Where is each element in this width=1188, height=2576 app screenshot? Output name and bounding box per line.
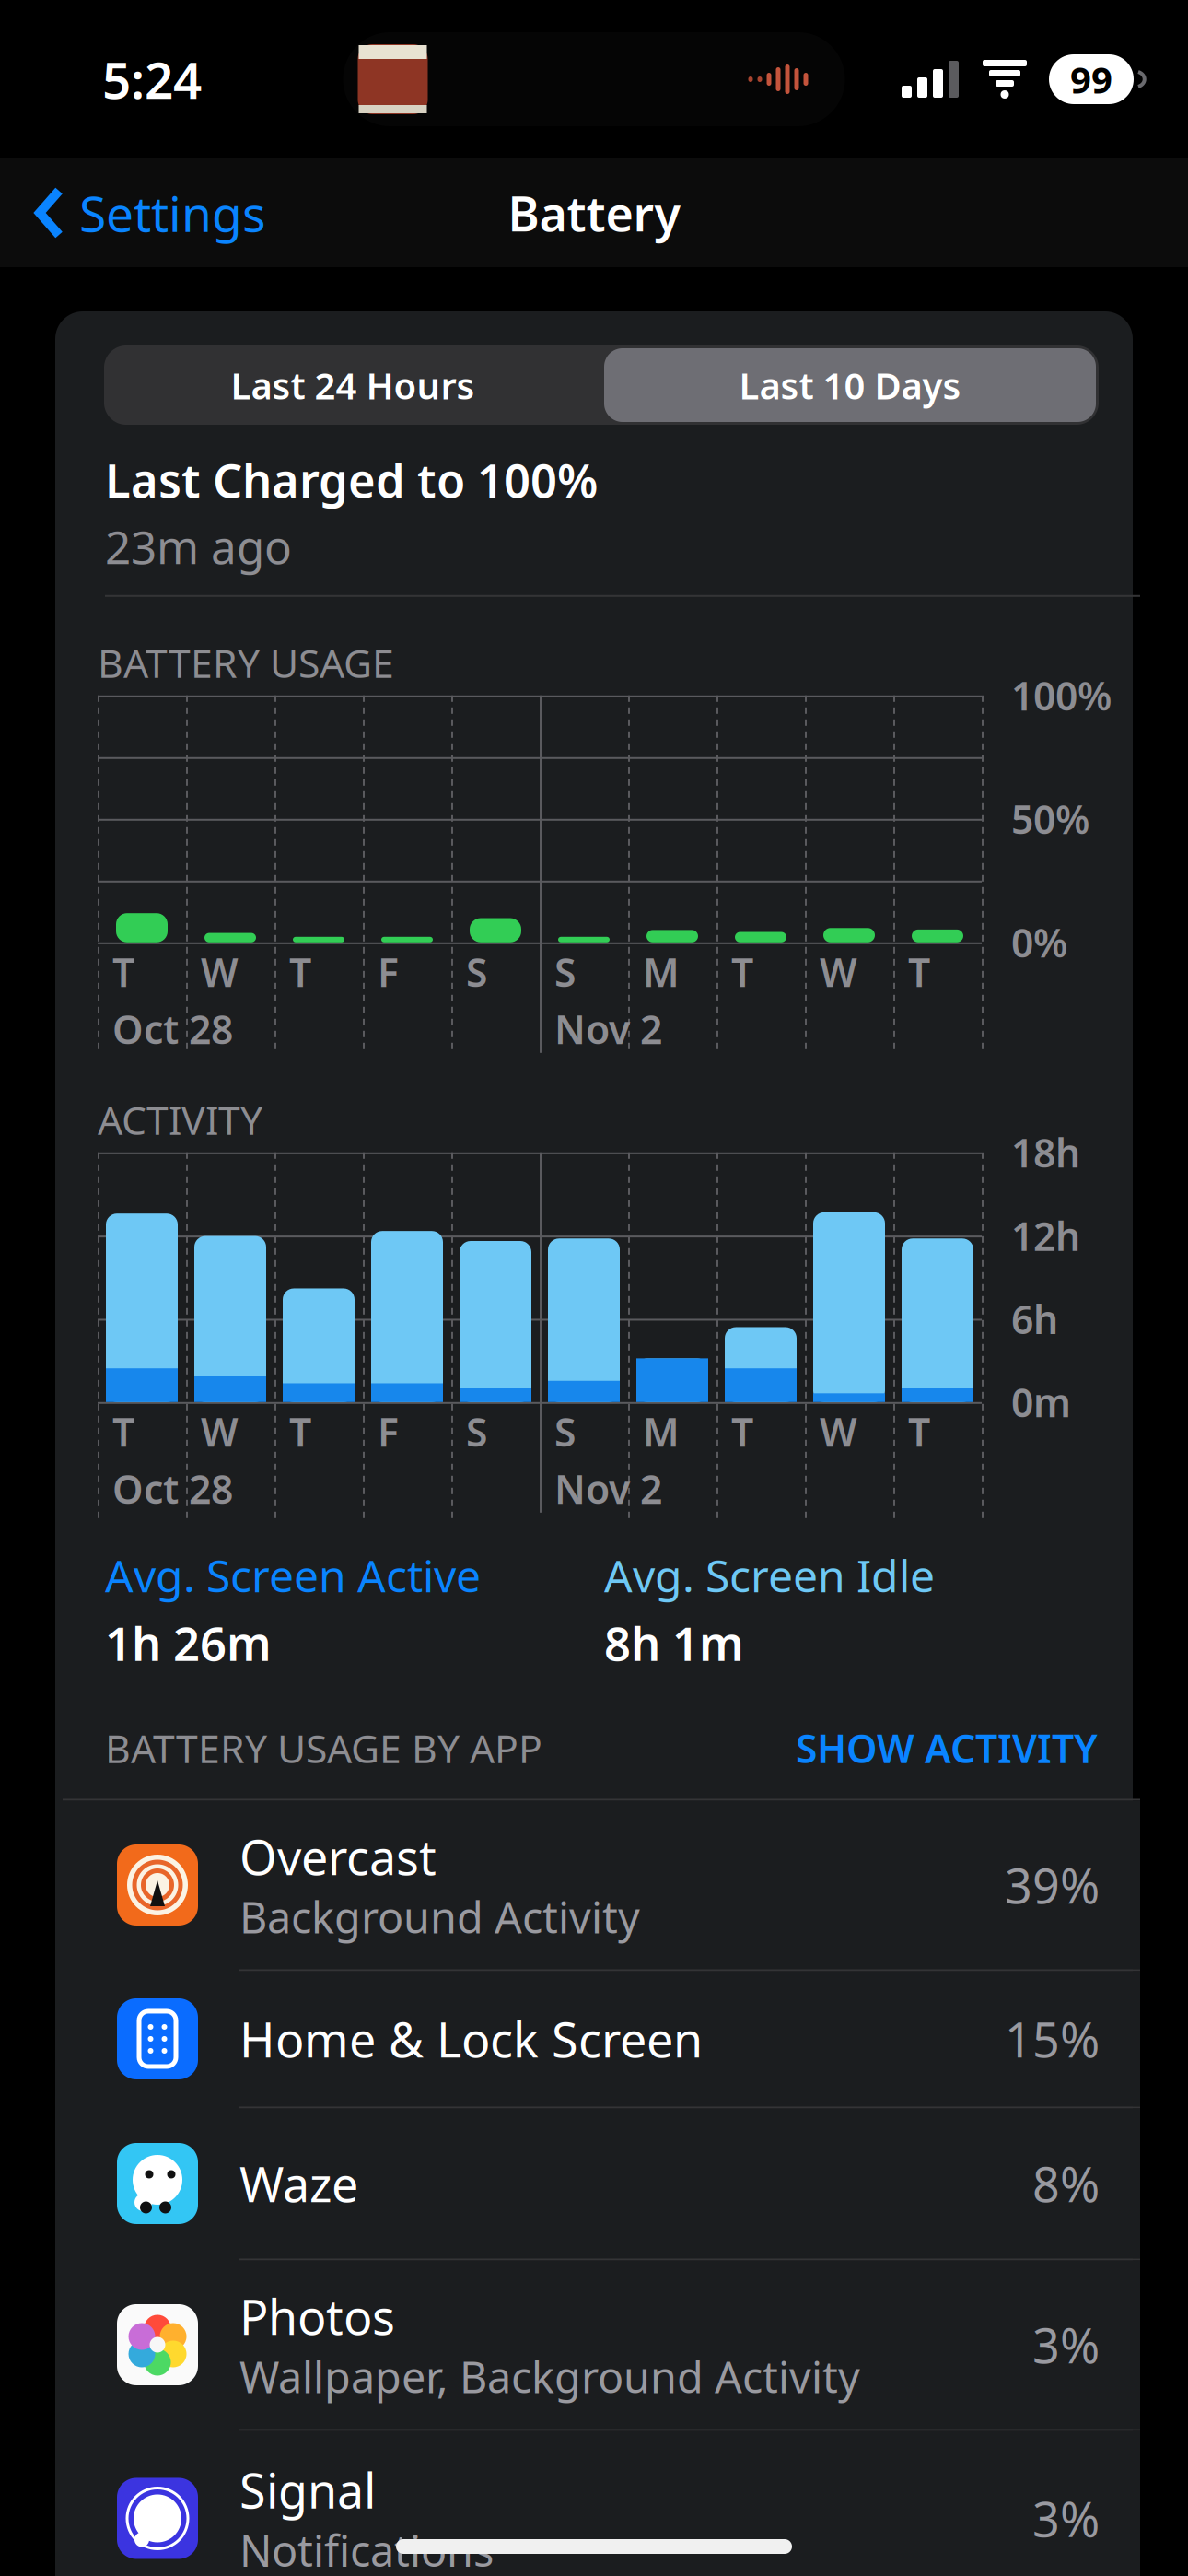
- button[interactable]: SHOW ACTIVITY: [796, 1722, 1098, 1774]
- staticText: 8h 1m: [604, 1612, 744, 1674]
- staticText: Background Activity: [239, 1888, 640, 1945]
- staticText: Overcast: [239, 1825, 437, 1888]
- staticText: Signal: [239, 2458, 376, 2522]
- staticText: M: [643, 946, 680, 998]
- staticText: F: [378, 1405, 399, 1458]
- staticText: S: [466, 946, 487, 998]
- staticText: Nov 2: [554, 1003, 662, 1055]
- staticText: T: [731, 1405, 753, 1458]
- staticText: 99: [1070, 55, 1112, 104]
- staticText: 3%: [1032, 2487, 1100, 2550]
- staticText: M: [643, 1405, 680, 1458]
- staticText: T: [731, 946, 753, 998]
- button[interactable]: Signal: [63, 2431, 1140, 2576]
- button[interactable]: Last 10 Days: [601, 345, 1099, 425]
- staticText: Avg. Screen Active: [105, 1546, 481, 1604]
- staticText: ACTIVITY: [98, 1093, 262, 1146]
- staticText: 8%: [1032, 2152, 1100, 2215]
- staticText: T: [908, 946, 930, 998]
- button[interactable]: Waze: [63, 2108, 1140, 2259]
- staticText: 0%: [1011, 916, 1067, 968]
- staticText: 3%: [1032, 2313, 1100, 2377]
- button[interactable]: Photos: [63, 2260, 1140, 2429]
- staticText: W: [201, 1405, 239, 1458]
- staticText: Nov 2: [554, 1463, 662, 1515]
- staticText: Battery: [508, 181, 680, 245]
- staticText: 12h: [1011, 1210, 1080, 1262]
- button[interactable]: Settings: [0, 164, 266, 262]
- staticText: 0m: [1011, 1376, 1071, 1428]
- staticText: Waze: [239, 2152, 358, 2215]
- staticText: Avg. Screen Idle: [604, 1546, 935, 1604]
- staticText: Settings: [79, 180, 266, 245]
- staticText: W: [820, 946, 857, 998]
- staticText: 5:24: [102, 46, 202, 113]
- staticText: Wallpaper, Background Activity: [239, 2348, 860, 2405]
- staticText: Oct 28: [112, 1463, 233, 1515]
- staticText: 50%: [1011, 793, 1089, 845]
- staticText: BATTERY USAGE: [98, 636, 394, 689]
- staticText: 6h: [1011, 1293, 1058, 1345]
- staticText: Last Charged to 100%: [105, 449, 598, 511]
- staticText: W: [201, 946, 239, 998]
- staticText: Notifications: [239, 2522, 494, 2576]
- button[interactable]: Home & Lock Screen: [63, 1971, 1140, 2107]
- button[interactable]: Last 24 Hours: [104, 345, 601, 425]
- staticText: 23m ago: [105, 516, 292, 577]
- staticText: S: [554, 946, 576, 998]
- staticText: SHOW ACTIVITY: [796, 1722, 1098, 1774]
- staticText: Last 10 Days: [739, 361, 961, 410]
- staticText: T: [112, 1405, 134, 1458]
- staticText: Home & Lock Screen: [239, 2007, 703, 2071]
- staticText: Last 24 Hours: [231, 361, 475, 410]
- staticText: S: [466, 1405, 487, 1458]
- staticText: T: [908, 1405, 930, 1458]
- staticText: F: [378, 946, 399, 998]
- button[interactable]: Overcast: [63, 1801, 1140, 1969]
- staticText: T: [289, 1405, 311, 1458]
- staticText: W: [820, 1405, 857, 1458]
- staticText: 18h: [1011, 1126, 1080, 1179]
- staticText: T: [112, 946, 134, 998]
- staticText: 15%: [1005, 2007, 1100, 2071]
- staticText: Oct 28: [112, 1003, 233, 1055]
- staticText: 100%: [1011, 669, 1112, 722]
- staticText: Photos: [239, 2284, 395, 2348]
- staticText: 1h 26m: [105, 1612, 272, 1674]
- staticText: BATTERY USAGE BY APP: [105, 1722, 542, 1774]
- staticText: S: [554, 1405, 576, 1458]
- staticText: 39%: [1005, 1853, 1100, 1917]
- staticText: T: [289, 946, 311, 998]
